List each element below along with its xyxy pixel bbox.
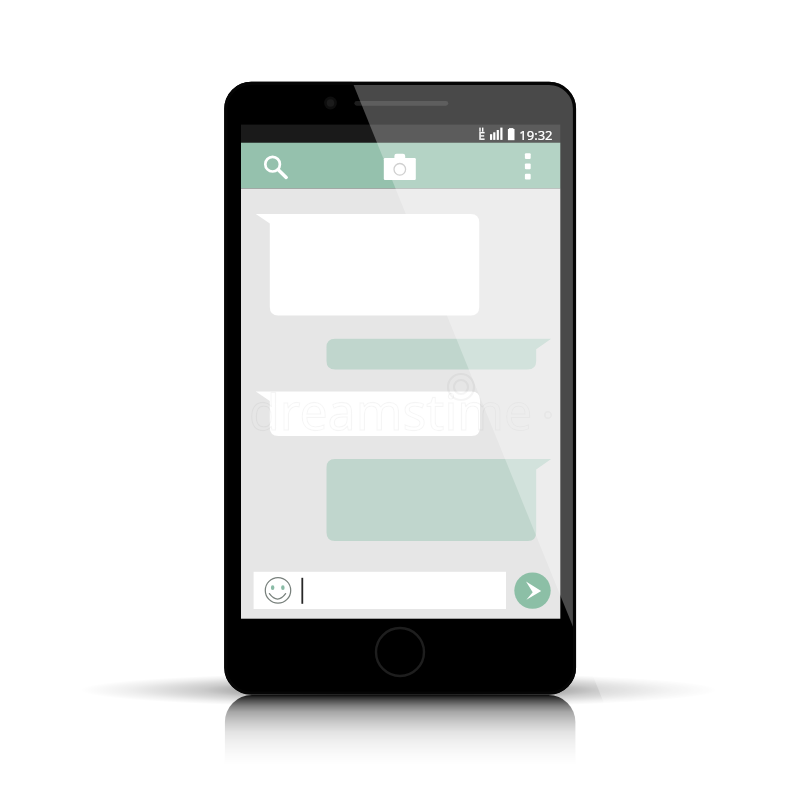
button[interactable]: Chat screen phone mockup: [0, 0, 800, 800]
